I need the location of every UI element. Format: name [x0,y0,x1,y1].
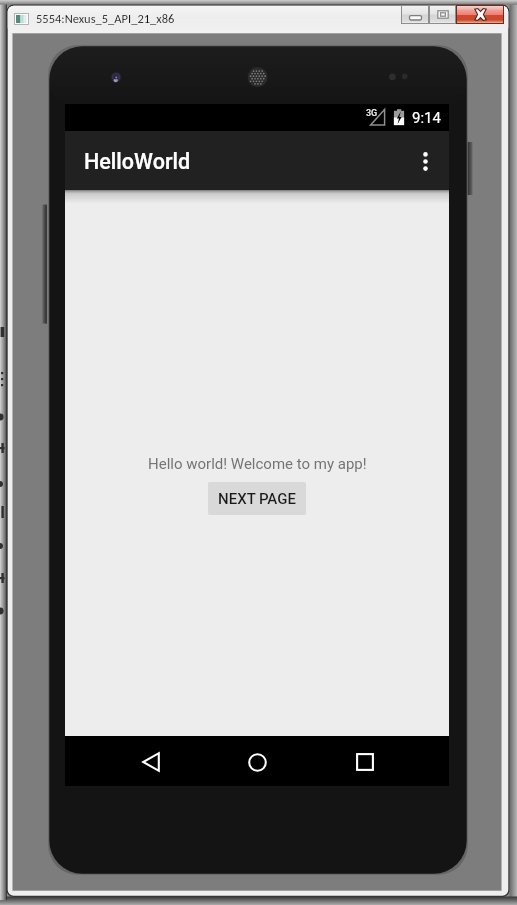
other: Maximize [437,10,449,19]
staticText: 3G [366,108,378,119]
button[interactable]: Recents [341,738,389,786]
other: Close [475,9,486,20]
button[interactable]: Minimize [401,5,429,24]
staticText: 9:14 [412,109,441,127]
button[interactable]: Home [233,738,281,786]
other: Minimize [409,9,422,21]
button[interactable]: More options [401,137,449,185]
button[interactable]: NEXT PAGE [208,482,306,515]
button[interactable]: Back [127,738,175,786]
staticText: Hello world! Welcome to my app! [148,455,367,473]
staticText: HelloWorld [84,149,191,174]
button[interactable]: Close [456,5,504,24]
staticText: NEXT PAGE [218,490,296,508]
button[interactable]: Maximize [429,5,456,24]
staticText: 5554:Nexus_5_API_21_x86 [36,11,175,26]
